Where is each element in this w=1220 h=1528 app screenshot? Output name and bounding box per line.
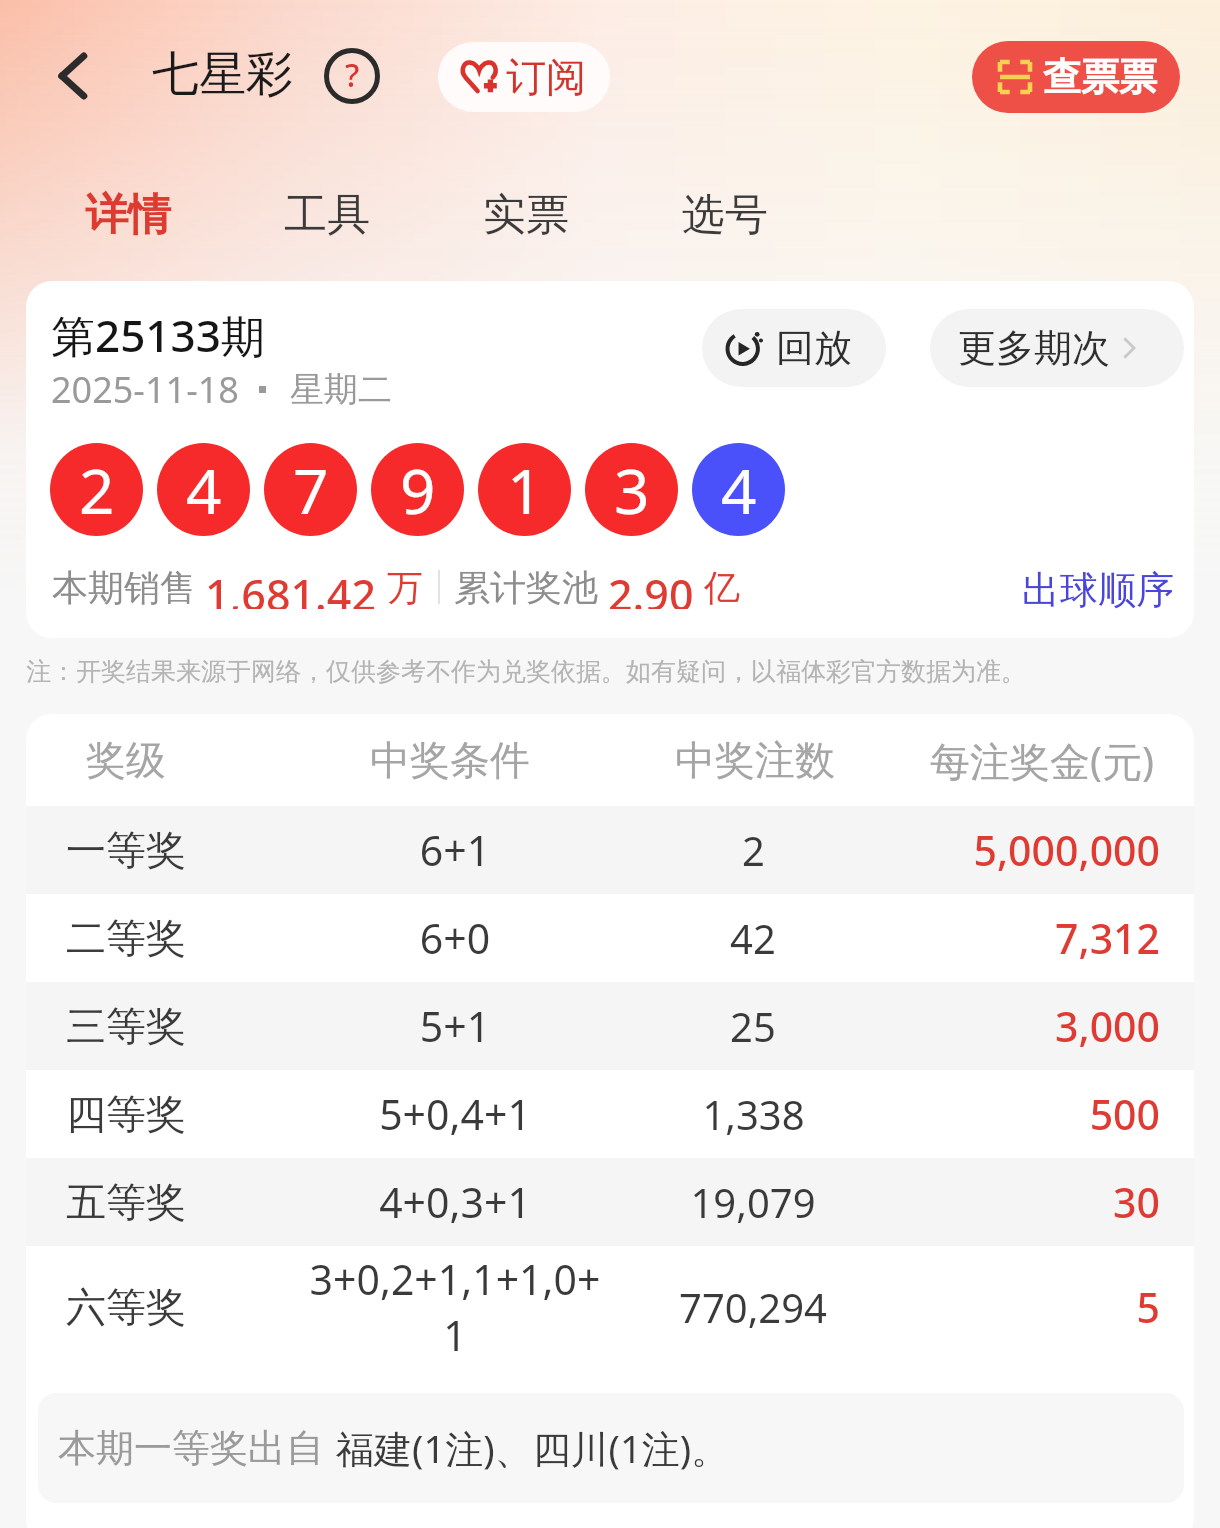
button[interactable]: 二等奖 xyxy=(26,894,1194,982)
staticText: 一等奖 xyxy=(66,825,186,875)
staticText: 4 xyxy=(721,448,757,532)
staticText: 选号 xyxy=(682,188,768,242)
staticText: 500 xyxy=(1089,1086,1160,1142)
staticText: 中奖条件 xyxy=(370,735,530,785)
staticText: 6+0 xyxy=(240,910,670,966)
staticText: 4+0,3+1 xyxy=(240,1174,670,1230)
staticText: 本期一等奖出自 xyxy=(58,1424,324,1472)
staticText: 详情 xyxy=(85,188,171,242)
staticText: 星期二 xyxy=(290,368,392,411)
staticText: 7 xyxy=(293,448,329,532)
staticText: 9 xyxy=(400,448,436,532)
staticText: 3,000 xyxy=(1054,998,1160,1054)
staticText: 770,294 xyxy=(679,1280,827,1334)
staticText: 福建(1注)、四川(1注)。 xyxy=(336,1422,730,1474)
staticText: 1,338 xyxy=(702,1087,805,1141)
staticText: 回放 xyxy=(776,324,852,372)
staticText: 出球顺序 xyxy=(1022,566,1174,614)
staticText: 三等奖 xyxy=(66,1001,186,1051)
staticText: 2.90 xyxy=(608,565,694,609)
staticText: 注：开奖结果来源于网络，仅供参考不作为兑奖依据。如有疑问，以福体彩官方数据为准。 xyxy=(26,656,1026,687)
staticText: 更多期次 xyxy=(958,324,1110,372)
button[interactable]: 五等奖 xyxy=(26,1158,1194,1246)
staticText: 本期销售 xyxy=(52,565,196,609)
staticText: 实票 xyxy=(483,188,569,242)
button[interactable]: 三等奖 xyxy=(26,982,1194,1070)
staticText: 5,000,000 xyxy=(973,822,1160,878)
staticText: 查票票 xyxy=(1043,53,1157,101)
button[interactable]: 订阅 xyxy=(438,42,610,112)
staticText: 七星彩 xyxy=(152,45,293,104)
staticText: 中奖注数 xyxy=(675,735,835,785)
staticText: ? xyxy=(345,53,360,97)
staticText: 1,681.42 xyxy=(205,565,377,609)
staticText: 二等奖 xyxy=(66,913,186,963)
button[interactable]: 工具 xyxy=(278,180,376,250)
staticText: 亿 xyxy=(704,565,740,609)
staticText: 6+1 xyxy=(240,822,670,878)
staticText: 5+1 xyxy=(240,998,670,1054)
staticText: 25 xyxy=(730,999,776,1053)
button[interactable]: 更多期次 xyxy=(930,309,1184,387)
staticText: 3+0,2+1,1+1,0+ 1 xyxy=(240,1251,670,1363)
staticText: 万 xyxy=(387,565,423,609)
staticText: 3 xyxy=(614,448,650,532)
staticText: 2025-11-18 xyxy=(51,365,239,414)
staticText: 7,312 xyxy=(1054,910,1160,966)
button[interactable]: 详情 xyxy=(79,180,177,250)
button[interactable]: 选号 xyxy=(676,180,774,250)
staticText: 1 xyxy=(507,448,543,532)
button[interactable]: Help xyxy=(323,47,381,105)
staticText: 六等奖 xyxy=(66,1282,186,1332)
staticText: 五等奖 xyxy=(66,1177,186,1227)
staticText: 第25133期 xyxy=(51,305,265,365)
staticText: 5 xyxy=(1136,1279,1160,1335)
staticText: 四等奖 xyxy=(66,1089,186,1139)
button[interactable]: Back xyxy=(43,44,107,108)
staticText: 订阅 xyxy=(506,52,586,102)
staticText: 每注奖金(元) xyxy=(930,733,1154,788)
staticText: 工具 xyxy=(284,188,370,242)
staticText: 奖级 xyxy=(86,735,166,785)
button[interactable]: 回放 xyxy=(702,309,886,387)
staticText: 累计奖池 xyxy=(454,565,598,609)
button[interactable]: 出球顺序 xyxy=(1016,560,1180,620)
button[interactable]: 查票票 xyxy=(972,41,1180,113)
staticText: 2 xyxy=(79,448,115,532)
button[interactable]: 一等奖 xyxy=(26,806,1194,894)
staticText: 42 xyxy=(730,911,776,965)
staticText: 2 xyxy=(742,823,765,877)
button[interactable]: 实票 xyxy=(477,180,575,250)
staticText: 30 xyxy=(1113,1174,1160,1230)
staticText: 19,079 xyxy=(690,1175,816,1229)
button[interactable]: 六等奖 xyxy=(26,1246,1194,1368)
staticText: 4 xyxy=(186,448,222,532)
staticText: 5+0,4+1 xyxy=(240,1086,670,1142)
button[interactable]: 四等奖 xyxy=(26,1070,1194,1158)
